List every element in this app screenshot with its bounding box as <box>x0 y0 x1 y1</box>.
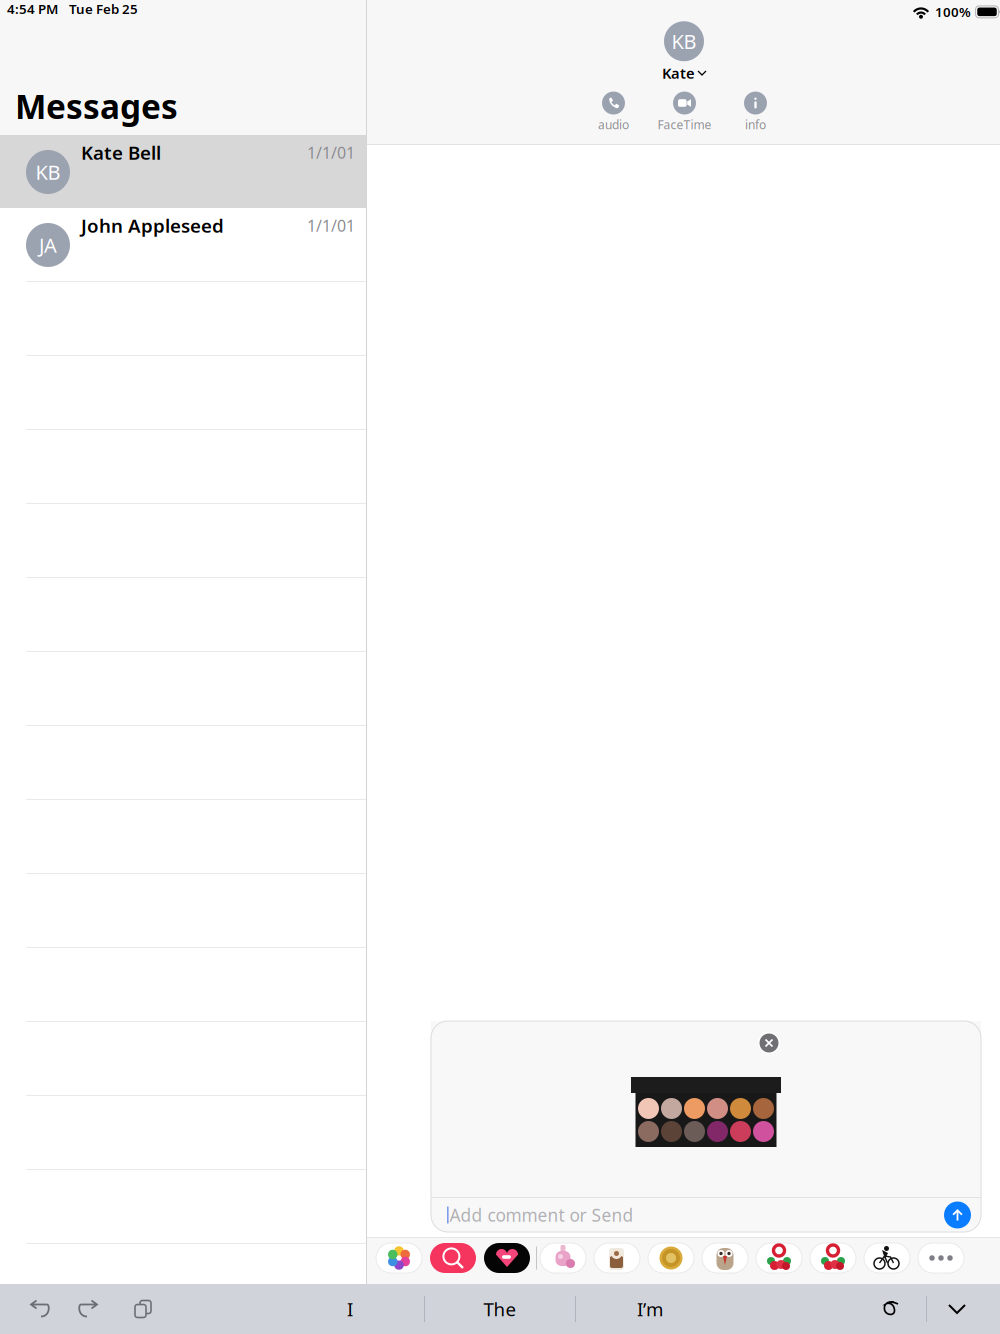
staticText: The <box>483 1297 516 1321</box>
staticText: audio <box>598 116 629 132</box>
staticText: 1/1/01 <box>307 215 355 236</box>
staticText: I’m <box>637 1297 663 1321</box>
staticText: Messages <box>15 84 178 128</box>
button[interactable]: Roses sticker <box>752 1241 806 1275</box>
staticText: Add comment or Send <box>450 1203 634 1226</box>
button[interactable]: The <box>425 1284 575 1334</box>
staticText: FaceTime <box>657 116 711 132</box>
staticText: John Appleseed <box>81 213 224 238</box>
button[interactable]: Paste <box>123 1289 163 1329</box>
button[interactable]: FaceTime <box>649 92 720 132</box>
staticText: I <box>347 1297 353 1321</box>
button[interactable]: Owl sticker <box>698 1241 752 1275</box>
button[interactable]: Photos <box>372 1241 426 1275</box>
staticText: Kate <box>662 63 695 83</box>
button[interactable]: Stickers <box>480 1241 534 1275</box>
button[interactable]: Handwriting <box>871 1284 911 1334</box>
staticText: 100% <box>935 3 971 21</box>
button[interactable]: KB <box>624 21 744 83</box>
button[interactable]: Coin sticker <box>644 1241 698 1275</box>
button[interactable]: Roses sticker <box>806 1241 860 1275</box>
staticText: KB <box>671 28 696 55</box>
button[interactable]: KB <box>0 135 366 208</box>
button[interactable]: Send <box>944 1201 971 1228</box>
button[interactable]: Hide keyboard <box>936 1284 978 1334</box>
staticText: info <box>745 116 766 132</box>
button[interactable]: Cyclist sticker <box>860 1241 914 1275</box>
button[interactable]: JA <box>0 208 366 281</box>
button[interactable]: More apps <box>914 1241 968 1275</box>
button[interactable]: audio <box>578 92 649 132</box>
button[interactable]: App Store <box>426 1241 480 1275</box>
staticText: JA <box>39 232 57 258</box>
button[interactable]: Perfume sticker <box>536 1241 590 1275</box>
button[interactable]: I’m <box>576 1284 724 1334</box>
staticText: 4:54 PM <box>7 0 58 18</box>
button[interactable]: Undo <box>18 1289 58 1329</box>
staticText: Kate Bell <box>81 140 161 165</box>
staticText: Tue Feb 25 <box>69 0 138 18</box>
staticText: KB <box>35 159 60 185</box>
button[interactable]: Latte sticker <box>590 1241 644 1275</box>
staticText: 1/1/01 <box>307 142 355 163</box>
button[interactable]: Remove attachment <box>757 1031 781 1055</box>
button[interactable]: info <box>720 92 791 132</box>
button[interactable]: Redo <box>70 1289 110 1329</box>
button[interactable]: I <box>276 1284 424 1334</box>
